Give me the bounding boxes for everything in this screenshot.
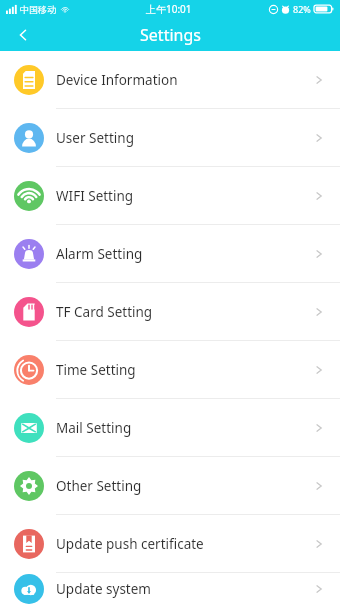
button[interactable]: TF Card Setting	[0, 283, 340, 341]
button[interactable]: User Setting	[0, 109, 340, 167]
button[interactable]: Time Setting	[0, 341, 340, 399]
button[interactable]: Update push certificate	[0, 515, 340, 573]
staticText: Update push certificate	[56, 535, 204, 553]
button[interactable]: Back	[8, 20, 38, 50]
button[interactable]: Update system	[0, 573, 340, 604]
staticText: WIFI Setting	[56, 187, 134, 205]
staticText: Other Setting	[56, 477, 142, 495]
button[interactable]: Alarm Setting	[0, 225, 340, 283]
button[interactable]: Other Setting	[0, 457, 340, 515]
staticText: Settings	[140, 24, 201, 46]
staticText: Device Information	[56, 71, 178, 89]
staticText: 82%	[293, 3, 311, 15]
staticText: Alarm Setting	[56, 245, 143, 263]
staticText: Time Setting	[56, 361, 136, 379]
staticText: 上午10:01	[146, 2, 192, 16]
staticText: 中国移动	[20, 4, 56, 15]
staticText: Update system	[56, 580, 151, 598]
staticText: User Setting	[56, 129, 134, 147]
button[interactable]: Mail Setting	[0, 399, 340, 457]
staticText: TF Card Setting	[56, 303, 153, 321]
button[interactable]: Device Information	[0, 51, 340, 109]
button[interactable]: WIFI Setting	[0, 167, 340, 225]
staticText: Mail Setting	[56, 419, 132, 437]
